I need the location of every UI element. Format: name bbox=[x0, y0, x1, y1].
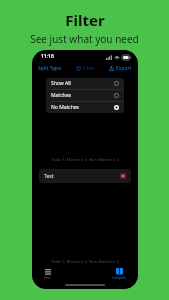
button[interactable]: Export bbox=[108, 65, 133, 72]
button[interactable]: Split Type bbox=[37, 65, 63, 72]
staticText: Test bbox=[44, 276, 51, 280]
staticText: Compare bbox=[112, 276, 126, 280]
staticText: Test bbox=[44, 173, 54, 180]
staticText: See just what you need bbox=[30, 32, 139, 46]
staticText: Split Type bbox=[38, 65, 62, 72]
button[interactable]: Test bbox=[39, 169, 131, 183]
staticText: Export bbox=[116, 65, 132, 72]
button[interactable]: Show All bbox=[46, 78, 124, 89]
staticText: Filter bbox=[83, 65, 95, 72]
button[interactable]: No Matches bbox=[46, 102, 124, 113]
staticText: No Matches bbox=[51, 104, 79, 111]
staticText: Matches bbox=[51, 92, 71, 99]
button[interactable]: Compare bbox=[110, 266, 128, 282]
button[interactable]: Test bbox=[42, 267, 53, 282]
button[interactable]: Filter bbox=[75, 65, 96, 72]
staticText: Total: 6 Matches: 4 Non-Matches: 2 bbox=[32, 157, 138, 162]
staticText: Total: 6 Matches: 4 Non-Matches: 2 bbox=[32, 259, 138, 264]
staticText: Filter bbox=[65, 10, 105, 30]
button[interactable]: Matches bbox=[46, 90, 124, 101]
staticText: 11:16 bbox=[41, 53, 54, 60]
staticText: Show All bbox=[51, 80, 71, 87]
other: Clear bbox=[120, 173, 126, 179]
